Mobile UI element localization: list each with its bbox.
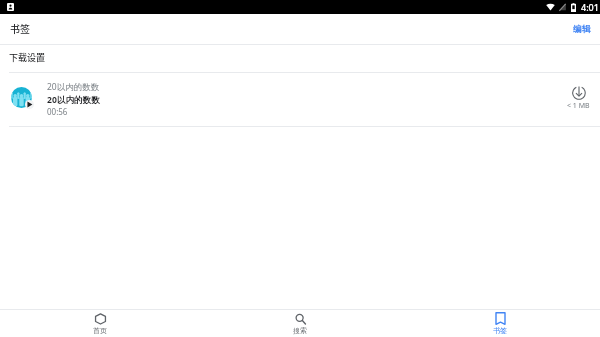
staticText: 20以内的数数 <box>47 81 100 93</box>
button[interactable]: 搜索 <box>200 310 400 335</box>
staticText: < 1 MB <box>567 101 590 111</box>
button[interactable]: 书签 <box>400 310 600 335</box>
staticText: 编辑 <box>573 24 591 35</box>
staticText: 书签 <box>10 21 30 35</box>
staticText: 20以内的数数 <box>47 94 100 106</box>
staticText: 搜索 <box>293 326 307 335</box>
staticText: 4:01 <box>581 1 599 13</box>
staticText: 书签 <box>493 326 507 335</box>
button[interactable]: 20以内的数数 <box>0 73 600 126</box>
staticText: 下载设置 <box>9 51 46 64</box>
staticText: 00:56 <box>47 106 68 117</box>
staticText: 首页 <box>93 326 107 335</box>
button[interactable]: Download <box>560 83 597 116</box>
button[interactable]: 编辑 <box>564 18 600 41</box>
button[interactable]: 首页 <box>0 310 200 335</box>
